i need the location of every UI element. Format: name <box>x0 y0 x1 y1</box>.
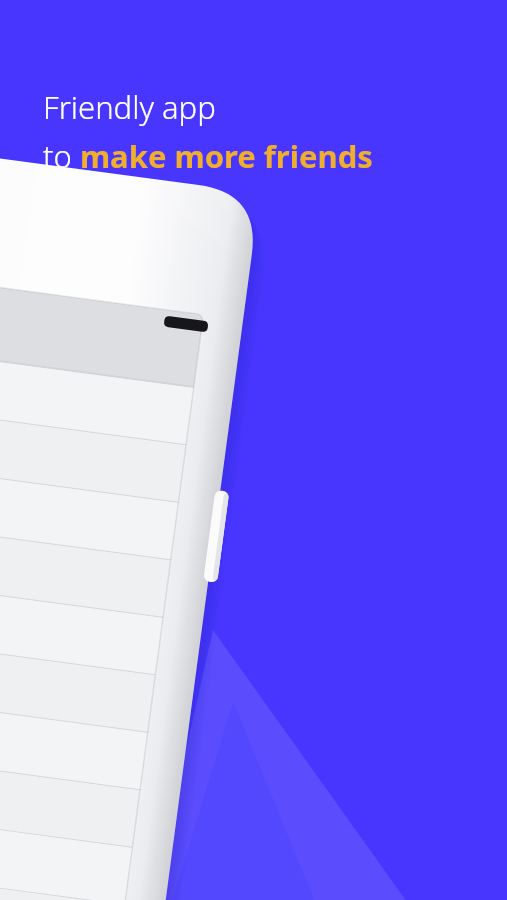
staticText: to make more friends <box>43 135 373 177</box>
staticText: Friendly app <box>43 86 216 128</box>
button[interactable]: Phone app preview <box>0 0 507 900</box>
